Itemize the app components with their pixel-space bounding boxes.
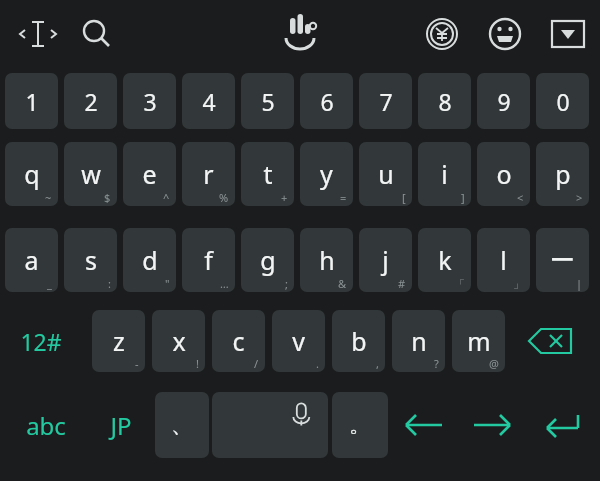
- button[interactable]: u: [359, 142, 412, 206]
- staticText: q: [24, 157, 40, 191]
- button[interactable]: j: [359, 228, 412, 292]
- button[interactable]: r: [182, 142, 235, 206]
- button[interactable]: Latin letters: [8, 392, 84, 458]
- staticText: @: [489, 356, 499, 371]
- button[interactable]: a: [5, 228, 58, 292]
- button[interactable]: z: [92, 310, 145, 372]
- button[interactable]: 5: [241, 73, 294, 129]
- button[interactable]: h: [300, 228, 353, 292]
- button[interactable]: n: [392, 310, 445, 372]
- staticText: d: [142, 243, 158, 277]
- button[interactable]: 4: [182, 73, 235, 129]
- staticText: 4: [202, 86, 216, 117]
- button[interactable]: p: [536, 142, 589, 206]
- staticText: -: [135, 356, 139, 371]
- button[interactable]: l: [477, 228, 530, 292]
- button[interactable]: t: [241, 142, 294, 206]
- button[interactable]: b: [332, 310, 385, 372]
- button[interactable]: Japanese: [90, 392, 152, 458]
- button[interactable]: Currency: [418, 10, 466, 58]
- button[interactable]: w: [64, 142, 117, 206]
- staticText: r: [203, 157, 214, 191]
- staticText: ]: [461, 190, 465, 205]
- button[interactable]: x: [152, 310, 205, 372]
- staticText: ;: [285, 276, 288, 291]
- button[interactable]: o: [477, 142, 530, 206]
- staticText: :: [108, 276, 111, 291]
- staticText: y: [320, 157, 333, 191]
- staticText: %: [219, 190, 229, 205]
- button[interactable]: Backspace: [512, 310, 590, 372]
- button[interactable]: Handwriting: [276, 10, 324, 58]
- staticText: 3: [143, 86, 157, 117]
- staticText: 、: [171, 411, 193, 439]
- staticText: a: [24, 243, 39, 277]
- staticText: $: [104, 190, 111, 205]
- staticText: 」: [513, 277, 524, 291]
- button[interactable]: ー: [536, 228, 589, 292]
- button[interactable]: v: [272, 310, 325, 372]
- staticText: 。: [349, 411, 371, 439]
- button[interactable]: 2: [64, 73, 117, 129]
- staticText: b: [351, 324, 367, 358]
- button[interactable]: q: [5, 142, 58, 206]
- staticText: !: [196, 356, 199, 371]
- staticText: h: [319, 243, 335, 277]
- staticText: x: [172, 324, 186, 358]
- button[interactable]: Move right: [460, 392, 524, 458]
- button[interactable]: d: [123, 228, 176, 292]
- staticText: k: [438, 243, 452, 277]
- button[interactable]: 3: [123, 73, 176, 129]
- staticText: JP: [110, 409, 132, 442]
- button[interactable]: 6: [300, 73, 353, 129]
- button[interactable]: Hide keyboard: [544, 10, 592, 58]
- staticText: _: [47, 276, 52, 291]
- button[interactable]: s: [64, 228, 117, 292]
- staticText: =: [340, 190, 347, 205]
- staticText: t: [263, 157, 273, 191]
- button[interactable]: k: [418, 228, 471, 292]
- button[interactable]: 8: [418, 73, 471, 129]
- button[interactable]: g: [241, 228, 294, 292]
- button[interactable]: Cursor: [14, 10, 62, 58]
- staticText: m: [467, 324, 491, 358]
- staticText: 0: [556, 86, 570, 117]
- button[interactable]: 7: [359, 73, 412, 129]
- button[interactable]: Emoji: [481, 10, 529, 58]
- button[interactable]: Numbers and symbols: [5, 310, 77, 372]
- staticText: abc: [26, 409, 66, 442]
- staticText: ": [165, 276, 170, 291]
- staticText: +: [281, 190, 288, 205]
- button[interactable]: Comma: [155, 392, 209, 458]
- button[interactable]: i: [418, 142, 471, 206]
- button[interactable]: 1: [5, 73, 58, 129]
- staticText: w: [81, 157, 101, 191]
- staticText: s: [85, 243, 97, 277]
- button[interactable]: Period: [332, 392, 388, 458]
- staticText: c: [232, 324, 245, 358]
- staticText: .: [316, 356, 319, 371]
- staticText: 1: [25, 86, 39, 117]
- button[interactable]: e: [123, 142, 176, 206]
- staticText: f: [204, 243, 213, 277]
- staticText: ,: [376, 356, 379, 371]
- staticText: 12#: [20, 326, 62, 357]
- staticText: p: [555, 157, 571, 191]
- button[interactable]: y: [300, 142, 353, 206]
- button[interactable]: Enter: [528, 392, 594, 458]
- button[interactable]: f: [182, 228, 235, 292]
- button[interactable]: c: [212, 310, 265, 372]
- staticText: #: [398, 276, 406, 291]
- button[interactable]: 0: [536, 73, 589, 129]
- staticText: ー: [550, 245, 575, 276]
- button[interactable]: 9: [477, 73, 530, 129]
- staticText: <: [517, 190, 524, 205]
- staticText: &: [338, 276, 347, 291]
- button[interactable]: Space: [212, 392, 328, 458]
- button[interactable]: Move left: [392, 392, 456, 458]
- staticText: o: [496, 157, 512, 191]
- button[interactable]: m: [452, 310, 505, 372]
- staticText: 6: [320, 86, 334, 117]
- button[interactable]: Search: [72, 10, 120, 58]
- staticText: n: [411, 324, 427, 358]
